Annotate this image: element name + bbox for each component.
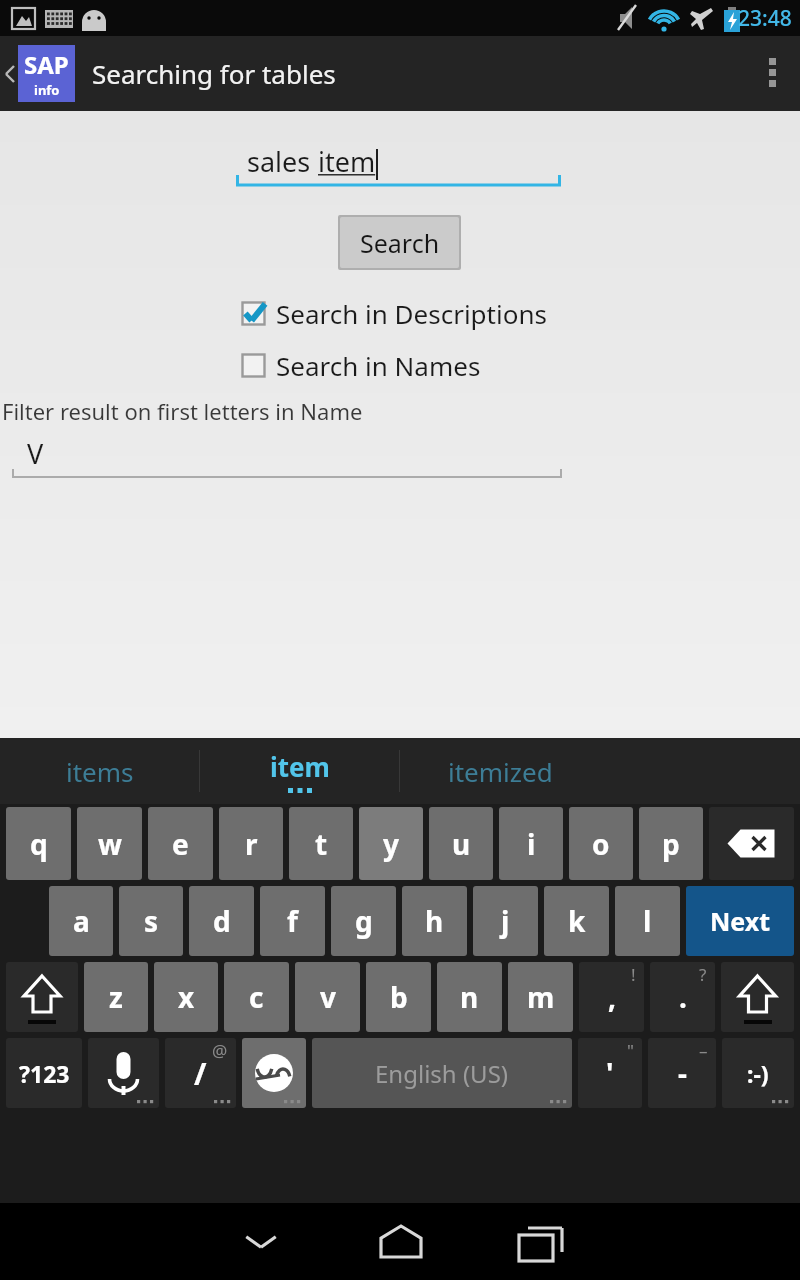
staticText: n xyxy=(460,978,479,1016)
button[interactable]: b xyxy=(366,962,431,1032)
button[interactable]: sales xyxy=(236,142,561,187)
button[interactable]: Home xyxy=(331,1203,471,1280)
button[interactable]: . xyxy=(650,962,715,1032)
button[interactable]: - xyxy=(648,1038,716,1108)
button[interactable]: , xyxy=(579,962,644,1032)
staticText: V xyxy=(27,435,44,472)
staticText: / xyxy=(194,1053,207,1094)
staticText: e xyxy=(172,825,189,863)
staticText: f xyxy=(287,902,298,940)
button[interactable]: Search in Names xyxy=(240,348,481,383)
staticText: " xyxy=(627,1039,634,1062)
staticText: y xyxy=(383,825,399,863)
staticText: Search xyxy=(360,226,440,260)
button[interactable]: v xyxy=(295,962,360,1032)
button[interactable]: :-) xyxy=(722,1038,794,1108)
button[interactable]: globe xyxy=(242,1038,306,1108)
button[interactable]: V xyxy=(12,434,562,478)
button[interactable]: shift xyxy=(6,962,78,1032)
button[interactable]: ' xyxy=(578,1038,642,1108)
staticText: o xyxy=(592,825,610,863)
staticText: info xyxy=(34,81,60,99)
staticText: t xyxy=(315,825,328,863)
staticText: ?123 xyxy=(19,1058,70,1089)
staticText: m xyxy=(527,978,555,1016)
button[interactable]: Search xyxy=(340,217,459,268)
staticText: ! xyxy=(631,963,636,986)
staticText: c xyxy=(249,978,264,1016)
staticText: q xyxy=(30,825,48,863)
button[interactable]: mic xyxy=(88,1038,159,1108)
button[interactable]: f xyxy=(260,886,325,956)
button[interactable]: item xyxy=(200,738,399,804)
button[interactable]: English (US) xyxy=(312,1038,572,1108)
button[interactable]: y xyxy=(359,807,423,880)
staticText: Filter result on first letters in Name xyxy=(2,396,363,426)
button[interactable]: d xyxy=(189,886,254,956)
staticText: item xyxy=(270,749,330,784)
staticText: w xyxy=(98,825,122,863)
button[interactable]: ?123 xyxy=(6,1038,82,1108)
staticText: – xyxy=(699,1039,708,1062)
button[interactable]: Search in Descriptions xyxy=(240,296,547,331)
staticText: x xyxy=(178,978,195,1016)
button[interactable]: Hide keyboard xyxy=(190,1203,331,1280)
button[interactable]: Recent apps xyxy=(471,1203,611,1280)
staticText: h xyxy=(425,902,444,940)
button[interactable]: s xyxy=(119,886,183,956)
button[interactable]: items xyxy=(0,738,199,804)
staticText: Search in Descriptions xyxy=(276,296,547,331)
staticText: k xyxy=(568,902,586,940)
staticText: a xyxy=(73,902,90,940)
staticText: r xyxy=(245,825,258,863)
button[interactable]: e xyxy=(148,807,213,880)
button[interactable]: h xyxy=(402,886,467,956)
staticText: item xyxy=(318,143,376,180)
button[interactable]: i xyxy=(499,807,563,880)
staticText: 23:48 xyxy=(738,4,792,33)
button[interactable]: t xyxy=(289,807,353,880)
button[interactable]: n xyxy=(437,962,502,1032)
staticText: z xyxy=(109,978,123,1016)
staticText: b xyxy=(390,978,408,1016)
staticText: g xyxy=(355,902,373,940)
button[interactable]: a xyxy=(49,886,113,956)
button[interactable]: c xyxy=(224,962,289,1032)
button[interactable]: o xyxy=(569,807,633,880)
button[interactable]: x xyxy=(154,962,218,1032)
button[interactable]: bksp xyxy=(709,807,794,880)
staticText: @ xyxy=(212,1039,228,1062)
button[interactable]: itemized xyxy=(400,738,600,804)
staticText: ? xyxy=(699,963,707,986)
staticText: English (US) xyxy=(375,1057,509,1090)
button[interactable]: / xyxy=(165,1038,236,1108)
staticText: itemized xyxy=(448,754,553,789)
button[interactable]: k xyxy=(544,886,609,956)
button[interactable]: shift xyxy=(721,962,794,1032)
staticText: SAP xyxy=(24,48,69,81)
staticText: sales xyxy=(247,143,318,180)
button[interactable]: m xyxy=(508,962,573,1032)
staticText: :-) xyxy=(747,1058,769,1089)
button[interactable]: z xyxy=(84,962,148,1032)
staticText: . xyxy=(679,978,687,1016)
staticText: - xyxy=(678,1054,687,1092)
button[interactable]: r xyxy=(219,807,283,880)
button[interactable]: p xyxy=(639,807,703,880)
button[interactable]: j xyxy=(473,886,538,956)
staticText: p xyxy=(662,825,680,863)
staticText: d xyxy=(213,902,231,940)
button[interactable]: More options xyxy=(746,36,800,111)
button[interactable]: l xyxy=(615,886,680,956)
staticText: u xyxy=(452,825,471,863)
staticText: s xyxy=(144,902,159,940)
button[interactable]: u xyxy=(429,807,493,880)
button[interactable]: w xyxy=(77,807,142,880)
staticText: l xyxy=(643,902,652,940)
button[interactable]: g xyxy=(331,886,396,956)
button[interactable]: q xyxy=(6,807,71,880)
button[interactable]: Next xyxy=(686,886,794,956)
button[interactable]: Navigate up xyxy=(0,45,75,102)
staticText: v xyxy=(320,978,336,1016)
staticText: i xyxy=(527,825,536,863)
